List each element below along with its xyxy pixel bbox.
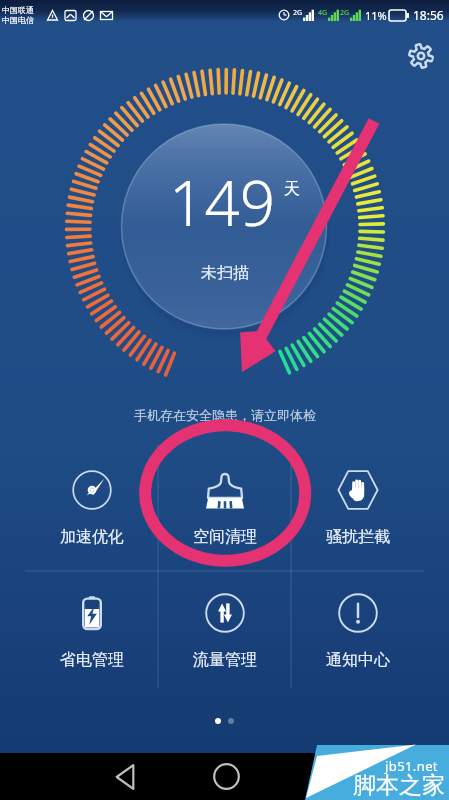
staticText: 省电管理 [60,650,124,670]
button[interactable]: 空间清理 [158,451,291,566]
button[interactable]: Back [101,753,149,800]
staticText: 空间清理 [193,527,257,547]
button[interactable]: 加速优化 [25,451,158,566]
button[interactable]: 省电管理 [25,574,158,689]
staticText: 脚本之家 [353,771,445,800]
staticText: 通知中心 [326,650,390,670]
staticText: 中国电信 [2,15,34,25]
staticText: 加速优化 [60,527,124,547]
staticText: 流量管理 [193,650,257,670]
staticText: 149 [169,160,276,244]
staticText: 2G [340,8,350,18]
button[interactable]: 通知中心 [291,574,424,689]
staticText: 手机存在安全隐患，请立即体检 [134,407,316,423]
staticText: jb51.net [385,757,438,775]
button[interactable]: 骚扰拦截 [291,451,424,566]
staticText: 未扫描 [201,263,249,283]
button[interactable]: Home [202,753,250,800]
button[interactable]: Settings [403,38,439,74]
staticText: 2G [293,8,303,18]
staticText: 骚扰拦截 [326,527,390,547]
staticText: 4G [318,8,328,18]
staticText: 11% [365,8,387,23]
staticText: 天 [284,179,300,199]
staticText: 18:56 [413,7,444,23]
staticText: 中国联通 [2,5,34,15]
button[interactable]: 流量管理 [158,574,291,689]
